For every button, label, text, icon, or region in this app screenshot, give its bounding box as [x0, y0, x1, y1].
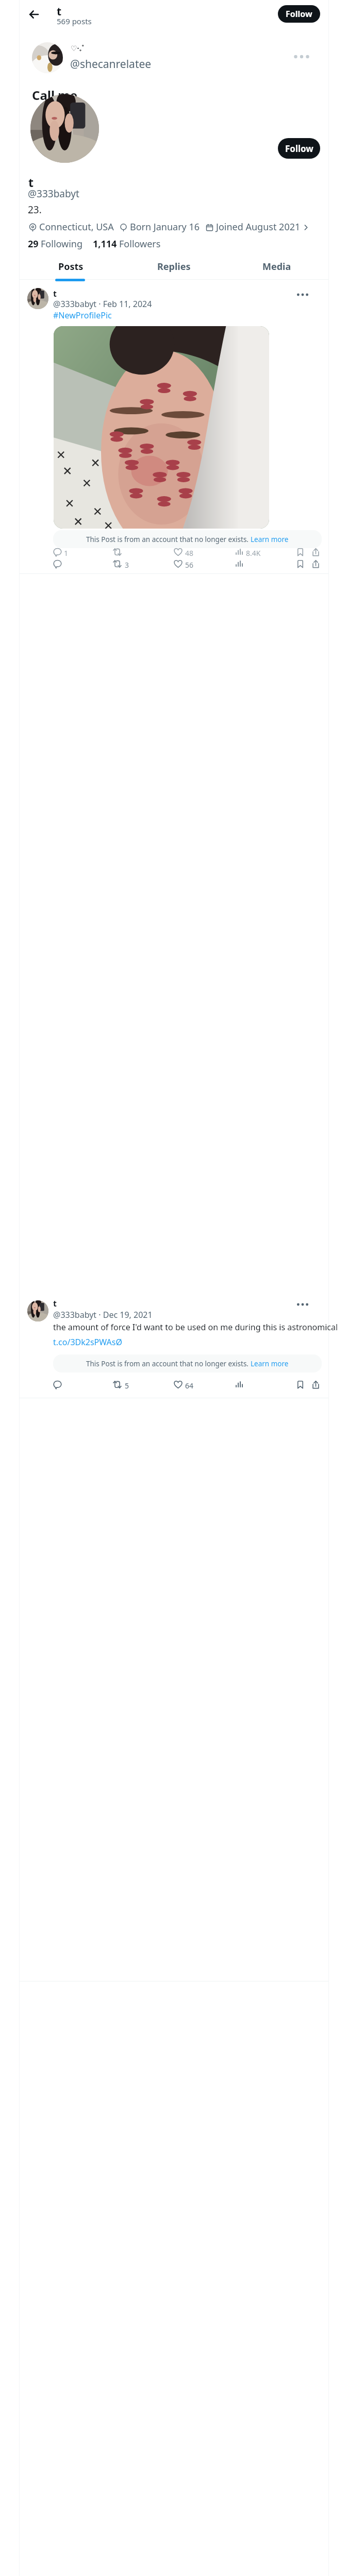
- staticText: @333babyt · Dec 19, 2021: [53, 1309, 153, 1320]
- staticText: Media: [262, 260, 291, 273]
- staticText: Posts: [58, 260, 84, 273]
- staticText: 1: [64, 548, 69, 558]
- button[interactable]: Reply: [53, 558, 74, 570]
- button[interactable]: Repost: [112, 546, 137, 558]
- staticText: @shecanrelatee: [70, 57, 152, 72]
- staticText: Call me: [32, 87, 78, 104]
- button[interactable]: Image: [54, 326, 269, 529]
- button[interactable]: Posts: [19, 256, 122, 281]
- staticText: 64: [185, 1381, 194, 1391]
- staticText: 23.: [28, 203, 42, 216]
- staticText: 8.4K: [246, 548, 261, 558]
- staticText: 5: [125, 1381, 129, 1391]
- staticText: t: [53, 1298, 57, 1309]
- button[interactable]: Reply: [53, 546, 74, 558]
- staticText: 29: [28, 238, 39, 250]
- staticText: Connecticut, USA: [39, 221, 114, 233]
- button[interactable]: Media: [225, 256, 328, 281]
- button[interactable]: This Post is from an account that no lon…: [53, 530, 322, 548]
- staticText: 48: [185, 548, 194, 558]
- button[interactable]: 29: [28, 238, 83, 250]
- button[interactable]: Repost: [112, 558, 137, 570]
- staticText: 3: [125, 560, 129, 570]
- staticText: Follow: [285, 143, 313, 155]
- button[interactable]: Follow: [278, 138, 320, 159]
- staticText: Follow: [286, 8, 312, 20]
- staticText: Replies: [157, 260, 191, 273]
- button[interactable]: This Post is from an account that no lon…: [53, 1354, 322, 1372]
- button[interactable]: Share: [310, 1379, 323, 1391]
- staticText: @333babyt · Feb 11, 2024: [53, 298, 152, 310]
- staticText: Following: [41, 238, 83, 250]
- staticText: Learn more: [251, 535, 289, 544]
- button[interactable]: View post analytics: [235, 546, 266, 558]
- button[interactable]: Share: [310, 546, 323, 558]
- staticText: t: [53, 288, 57, 299]
- staticText: @333babyt: [28, 187, 79, 200]
- button[interactable]: View post analytics: [235, 1379, 266, 1391]
- button[interactable]: Bookmark: [295, 1379, 307, 1391]
- button[interactable]: Like: [174, 558, 198, 570]
- staticText: t: [57, 4, 62, 19]
- button[interactable]: More: [297, 1299, 318, 1312]
- button[interactable]: Back: [25, 6, 43, 23]
- button[interactable]: Bookmark: [295, 546, 307, 558]
- button[interactable]: Bookmark: [295, 558, 307, 570]
- staticText: This Post is from an account that no lon…: [86, 535, 251, 544]
- staticText: t.co/3Dk2sPWAsØ: [53, 1336, 122, 1348]
- staticText: 56: [185, 560, 194, 570]
- staticText: t: [28, 174, 34, 190]
- staticText: Joined August 2021: [216, 221, 301, 233]
- button[interactable]: Reply: [53, 1379, 74, 1391]
- staticText: Learn more: [251, 1359, 289, 1368]
- staticText: 569 posts: [57, 16, 92, 26]
- button[interactable]: More: [297, 290, 318, 302]
- staticText: Followers: [119, 238, 161, 250]
- button[interactable]: Repost: [112, 1379, 137, 1391]
- button[interactable]: More: [296, 50, 317, 63]
- staticText: 1,114: [93, 238, 117, 250]
- button[interactable]: View post analytics: [235, 558, 266, 570]
- button[interactable]: Like: [174, 546, 198, 558]
- button[interactable]: Like: [174, 1379, 198, 1391]
- staticText: Born January 16: [130, 221, 200, 233]
- button[interactable]: Share: [310, 558, 323, 570]
- button[interactable]: Replies: [122, 256, 225, 281]
- staticText: #NewProfilePic: [53, 310, 112, 321]
- staticText: ♡·₊˚: [71, 43, 85, 53]
- staticText: This Post is from an account that no lon…: [86, 1359, 251, 1368]
- staticText: the amount of force I'd want to be used …: [53, 1321, 338, 1333]
- button[interactable]: Follow: [278, 5, 320, 23]
- button[interactable]: 1,114: [93, 238, 161, 250]
